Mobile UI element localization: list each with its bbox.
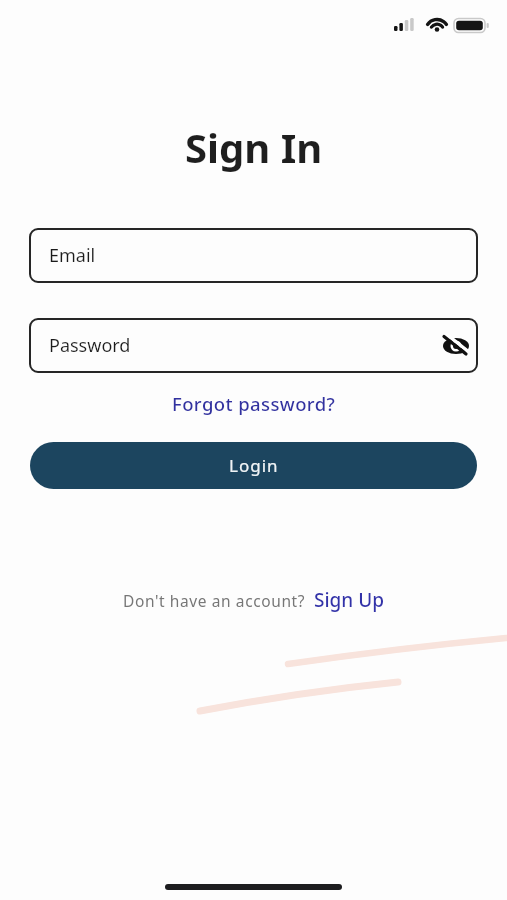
- staticText: Password: [49, 333, 131, 358]
- staticText: Sign Up: [314, 587, 385, 613]
- button[interactable]: Don't have an account?: [123, 587, 385, 613]
- button[interactable]: Email: [29, 228, 478, 283]
- button[interactable]: Password: [29, 318, 478, 373]
- staticText: Login: [229, 454, 279, 477]
- staticText: Don't have an account?: [123, 590, 306, 611]
- button[interactable]: Login: [30, 442, 477, 489]
- button[interactable]: [442, 332, 470, 360]
- button[interactable]: Forgot password?: [172, 391, 336, 416]
- staticText: Email: [49, 243, 96, 268]
- staticText: Sign In: [185, 120, 323, 174]
